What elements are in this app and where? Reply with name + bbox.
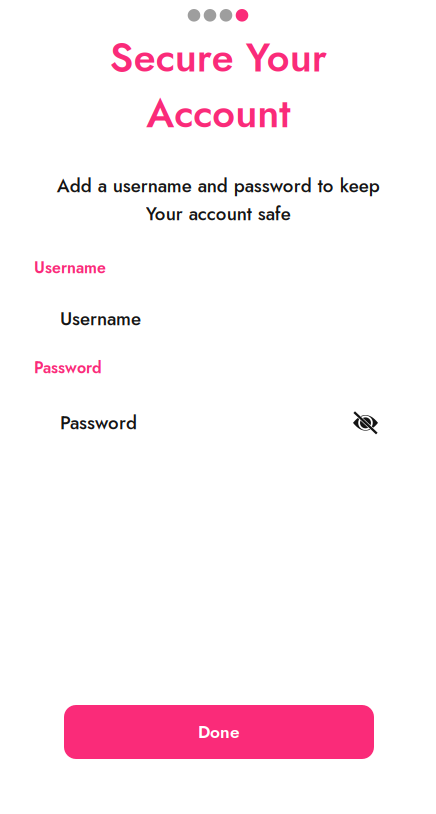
staticText: Done [198,719,240,744]
staticText: Add a username and password to keep Your… [56,172,379,227]
staticText: Password [60,409,137,436]
staticText: Password [34,356,102,379]
staticText: Username [60,305,141,332]
staticText: Secure Your Account [109,29,326,142]
button[interactable]: Done [64,705,374,759]
button[interactable]: Show password [353,412,436,434]
staticText: Username [34,256,106,279]
